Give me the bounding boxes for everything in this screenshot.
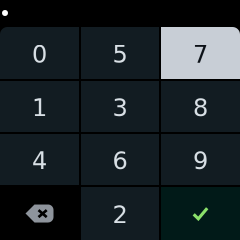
- button[interactable]: 2: [81, 187, 159, 240]
- button[interactable]: 6: [81, 134, 159, 185]
- staticText: 6: [112, 147, 127, 175]
- staticText: 1: [32, 94, 47, 122]
- button[interactable]: 7: [161, 27, 240, 79]
- staticText: 3: [112, 94, 127, 122]
- button[interactable]: 4: [0, 134, 79, 185]
- button[interactable]: 0: [0, 27, 79, 79]
- button[interactable]: 5: [81, 27, 159, 79]
- staticText: 5: [112, 40, 127, 68]
- staticText: 9: [193, 147, 208, 175]
- button[interactable]: 1: [0, 81, 79, 132]
- staticText: 0: [32, 40, 47, 68]
- button[interactable]: Delete: [0, 187, 79, 240]
- staticText: 2: [112, 201, 127, 229]
- button[interactable]: 9: [161, 134, 240, 185]
- button[interactable]: 3: [81, 81, 159, 132]
- button[interactable]: Confirm: [161, 187, 240, 240]
- staticText: 4: [32, 147, 47, 175]
- button[interactable]: 8: [161, 81, 240, 132]
- staticText: 8: [193, 94, 208, 122]
- staticText: 7: [193, 40, 208, 68]
